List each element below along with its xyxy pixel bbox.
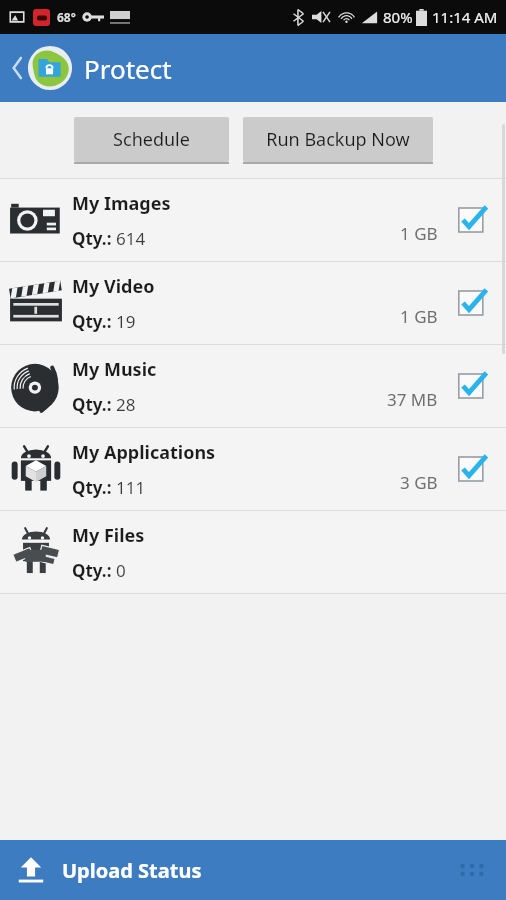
staticText: My Music xyxy=(72,357,157,382)
button[interactable]: My Applications xyxy=(0,428,506,510)
staticText: Run Backup Now xyxy=(266,127,410,152)
staticText: 1 GB xyxy=(400,305,438,328)
button[interactable]: Toggle My Music xyxy=(450,364,494,408)
staticText: My Video xyxy=(72,274,155,299)
staticText: Qty.: xyxy=(72,310,116,333)
button[interactable]: Toggle My Images xyxy=(450,198,494,242)
staticText: My Applications xyxy=(72,440,216,465)
button[interactable]: Schedule xyxy=(74,117,229,162)
staticText: 1 GB xyxy=(400,222,438,245)
staticText: Protect xyxy=(84,51,172,86)
button[interactable]: My Video xyxy=(0,262,506,344)
button[interactable]: Upload Status xyxy=(14,854,202,886)
button[interactable]: My Files xyxy=(0,511,506,593)
staticText: 11:14 AM xyxy=(432,7,498,27)
staticText: Qty.: xyxy=(72,559,116,582)
staticText: Qty.: xyxy=(72,393,116,416)
button[interactable]: My Images xyxy=(0,179,506,261)
staticText: 0 xyxy=(116,559,126,582)
staticText: Qty.: xyxy=(72,476,116,499)
staticText: My Files xyxy=(72,523,145,548)
staticText: Upload Status xyxy=(62,857,202,884)
staticText: 80% xyxy=(383,7,413,27)
button[interactable]: Run Backup Now xyxy=(243,117,433,162)
button[interactable]: Toggle My Video xyxy=(450,281,494,325)
staticText: Qty.: xyxy=(72,227,116,250)
staticText: 28 xyxy=(116,393,136,416)
staticText: 614 xyxy=(116,227,146,250)
staticText: 3 GB xyxy=(400,471,438,494)
staticText: My Images xyxy=(72,191,171,216)
staticText: 68° xyxy=(57,9,76,25)
staticText: 111 xyxy=(116,476,146,499)
button[interactable]: More options xyxy=(452,850,492,890)
staticText: 37 MB xyxy=(387,388,438,411)
button[interactable]: Back to Protect xyxy=(6,44,176,92)
staticText: Schedule xyxy=(113,127,190,152)
staticText: 19 xyxy=(116,310,136,333)
button[interactable]: Toggle My Applications xyxy=(450,447,494,491)
button[interactable]: My Music xyxy=(0,345,506,427)
